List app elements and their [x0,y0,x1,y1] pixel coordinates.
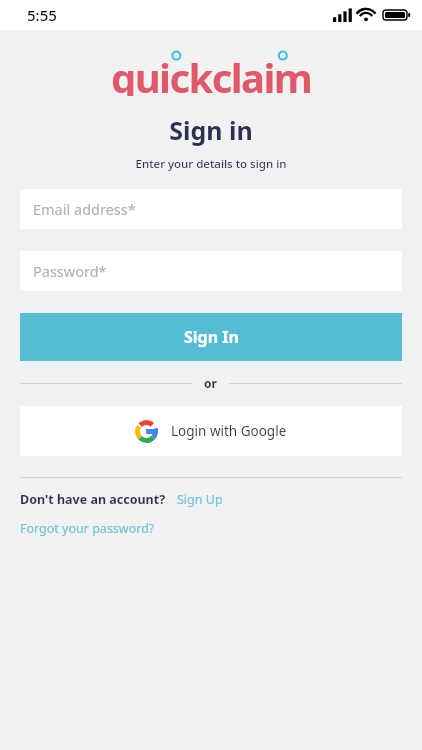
button[interactable]: Sign Up [166,489,225,510]
button[interactable]: Forgot your password? [20,518,155,539]
staticText: Don't have an account? [20,491,166,508]
staticText: Enter your details to sign in [0,156,422,172]
button[interactable]: Email address* [20,189,402,229]
button[interactable]: Sign In [20,313,402,361]
staticText: quickclaim [111,50,312,96]
button[interactable]: Google logo [20,406,402,456]
staticText: Sign In [184,326,239,348]
staticText: Forgot your password? [20,520,155,537]
staticText: Password* [33,261,107,281]
staticText: Sign in [0,113,422,147]
staticText: Email address* [33,199,136,219]
button[interactable]: Password* [20,251,402,291]
staticText: or [204,375,217,391]
staticText: Login with Google [171,422,287,440]
other: Google logo [135,420,158,443]
staticText: Sign Up [177,491,223,508]
staticText: 5:55 [27,5,57,25]
